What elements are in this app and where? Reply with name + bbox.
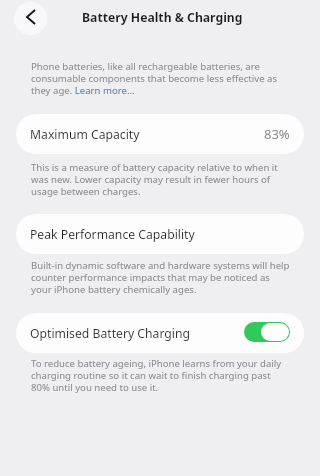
staticText: 83%: [264, 125, 290, 143]
button[interactable]: Optimised Battery Charging: [16, 313, 304, 353]
staticText: Optimised Battery Charging: [30, 325, 190, 342]
button[interactable]: Peak Performance Capability: [16, 214, 304, 254]
staticText: Phone batteries, like all rechargeable b…: [31, 60, 290, 97]
staticText: To reduce battery ageing, iPhone learns …: [31, 357, 290, 394]
staticText: This is a measure of battery capacity re…: [31, 161, 290, 198]
button[interactable]: Back: [14, 2, 47, 35]
staticText: Built-in dynamic software and hardware s…: [31, 259, 290, 296]
staticText: Maximum Capacity: [30, 126, 140, 143]
staticText: Peak Performance Capability: [30, 226, 195, 243]
button[interactable]: Maximum Capacity: [16, 114, 304, 154]
button[interactable]: Optimised Battery Charging toggle: [244, 322, 290, 342]
staticText: Battery Health & Charging: [82, 9, 243, 26]
